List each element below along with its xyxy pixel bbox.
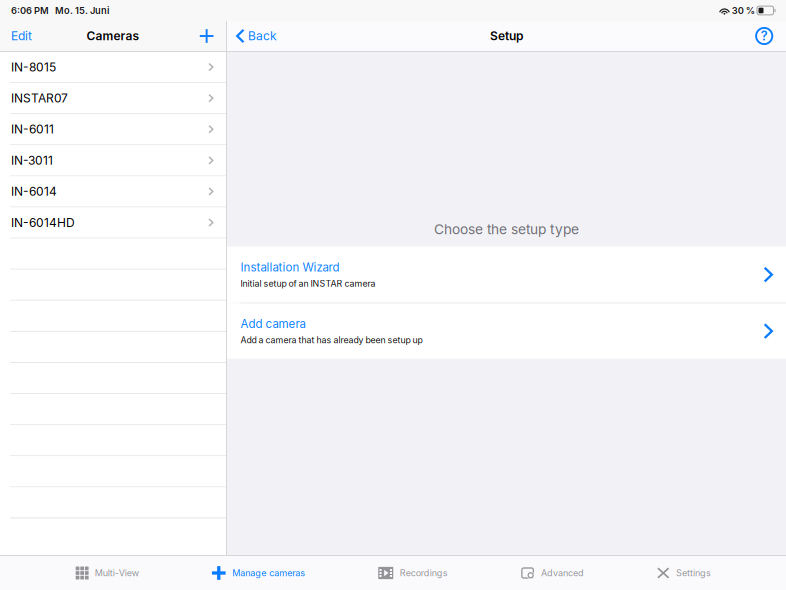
button[interactable]: Back [227, 21, 286, 51]
staticText: IN-6011 [11, 122, 54, 136]
staticText: INSTAR07 [11, 91, 68, 105]
staticText: Cameras [86, 29, 139, 43]
button[interactable]: IN-3011 [0, 145, 226, 176]
staticText: Choose the setup type [434, 221, 579, 238]
staticText: 30 % [732, 5, 755, 16]
button[interactable]: IN-8015 [0, 52, 226, 83]
staticText: ? [761, 28, 768, 44]
button[interactable]: Edit [0, 21, 43, 51]
staticText: Initial setup of an INSTAR camera [241, 278, 376, 289]
staticText: IN-6014 [11, 184, 57, 199]
staticText: Manage cameras [232, 567, 305, 578]
staticText: Edit [11, 29, 32, 43]
staticText: Add a camera that has already been setup… [241, 335, 423, 345]
button[interactable]: Add camera [227, 304, 786, 359]
staticText: IN-8015 [11, 60, 56, 74]
button[interactable]: Help [746, 21, 786, 51]
button[interactable]: IN-6011 [0, 114, 226, 145]
staticText: Installation Wizard [241, 260, 340, 274]
button[interactable]: Installation Wizard [227, 247, 786, 303]
staticText: Multi-View [95, 567, 139, 578]
staticText: Recordings [400, 567, 448, 578]
button[interactable]: Manage cameras [212, 556, 305, 590]
staticText: IN-6014HD [11, 215, 75, 230]
staticText: 6:06 PM [11, 5, 49, 16]
staticText: Settings [676, 567, 711, 578]
button[interactable]: Add camera [189, 21, 226, 51]
staticText: Advanced [541, 567, 584, 578]
staticText: Add camera [241, 317, 306, 331]
staticText: Back [248, 29, 277, 43]
button[interactable]: Settings [657, 556, 711, 590]
button[interactable]: Recordings [378, 556, 448, 590]
button[interactable]: INSTAR07 [0, 83, 226, 114]
button[interactable]: Advanced [521, 556, 584, 590]
button[interactable]: IN-6014 [0, 176, 226, 207]
staticText: IN-3011 [11, 153, 53, 168]
button[interactable]: IN-6014HD [0, 207, 226, 239]
staticText: Setup [490, 29, 523, 43]
button[interactable]: Multi-View [76, 556, 139, 590]
staticText: Mo. 15. Juni [55, 5, 109, 16]
